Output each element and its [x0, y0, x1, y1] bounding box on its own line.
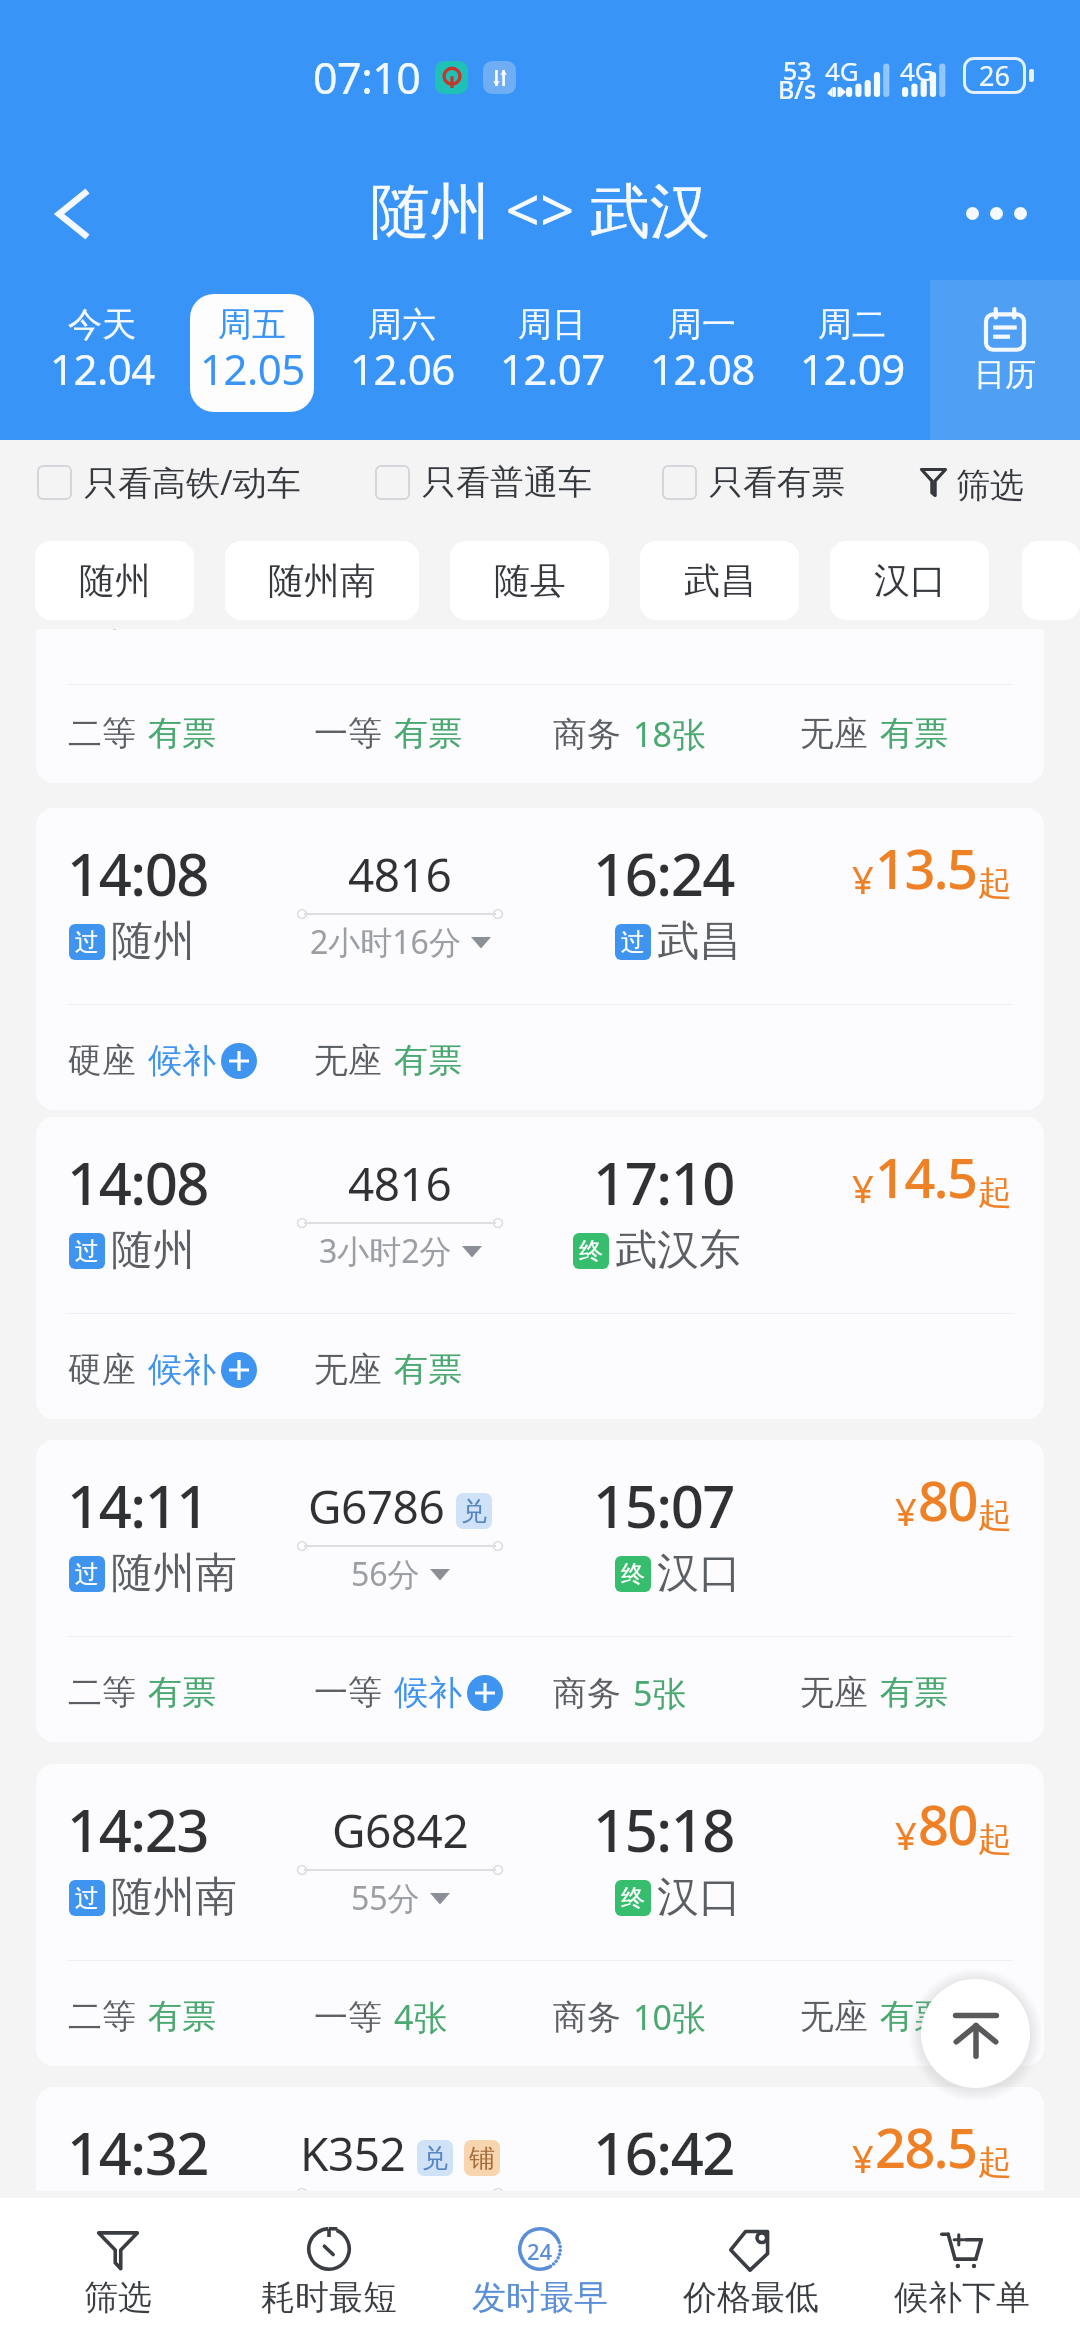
staticText: 硬座: [68, 1039, 136, 1082]
button[interactable]: 随州南: [225, 541, 419, 620]
staticText: 随州南: [111, 1871, 237, 1924]
button[interactable]: 只看普通车: [371, 450, 592, 514]
staticText: 14:23: [67, 1790, 208, 1869]
staticText: G6786: [308, 1475, 445, 1538]
staticText: 商务: [553, 713, 621, 756]
staticText: 12.08: [650, 340, 755, 397]
staticText: 有票: [880, 1995, 948, 2038]
staticText: 武昌: [684, 558, 756, 603]
button[interactable]: 价格最低: [646, 2198, 856, 2340]
button[interactable]: 日历: [935, 280, 1080, 440]
staticText: 候补: [394, 1671, 462, 1714]
staticText: 起: [978, 1818, 1012, 1861]
staticText: 一等: [314, 1996, 382, 2039]
staticText: 只看有票: [709, 461, 845, 504]
staticText: 终: [621, 1883, 645, 1913]
button[interactable]: 14:32: [36, 2087, 1044, 2191]
staticText: 起: [978, 1494, 1012, 1537]
staticText: 随州: [111, 1224, 195, 1277]
staticText: 有票: [880, 1671, 948, 1714]
staticText: 12.06: [350, 340, 455, 397]
staticText: 5张: [633, 1670, 687, 1716]
staticText: ¥: [895, 1809, 917, 1861]
staticText: 兑: [422, 2142, 448, 2175]
staticText: 无座: [314, 1348, 382, 1391]
staticText: 3小时2分: [319, 1229, 452, 1273]
staticText: G6842: [332, 1799, 469, 1862]
staticText: 过: [75, 1559, 99, 1589]
button[interactable]: 14:08: [36, 1117, 1044, 1419]
staticText: ¥: [852, 853, 874, 905]
staticText: B/s: [778, 72, 817, 106]
staticText: 候补: [148, 1039, 216, 1082]
staticText: 一等: [314, 1671, 382, 1714]
staticText: 28.5: [875, 2110, 977, 2184]
staticText: 周五: [218, 303, 286, 346]
staticText: 有票: [148, 712, 216, 755]
staticText: 17:10: [593, 1143, 738, 1222]
button[interactable]: 24: [435, 2198, 645, 2340]
staticText: 4G: [825, 53, 859, 88]
button[interactable]: 筛选: [13, 2198, 223, 2340]
button[interactable]: 周五: [177, 273, 327, 433]
staticText: 14:08: [67, 834, 208, 913]
staticText: 4816: [348, 843, 452, 906]
staticText: 无座: [800, 1995, 868, 2038]
button[interactable]: 随州: [35, 541, 194, 620]
button[interactable]: 周日: [477, 273, 627, 433]
button[interactable]: 汉口: [830, 541, 989, 620]
staticText: 终: [579, 1236, 603, 1266]
staticText: 15:18: [593, 1790, 738, 1869]
staticText: ¥: [895, 1485, 917, 1537]
button[interactable]: 14:08: [36, 808, 1044, 1110]
button[interactable]: 筛选: [908, 446, 1048, 518]
staticText: 26: [979, 57, 1010, 94]
button[interactable]: 今天: [27, 273, 177, 433]
staticText: 4G: [900, 53, 934, 88]
button[interactable]: 14:23: [36, 1764, 1044, 2066]
staticText: 终: [621, 1559, 645, 1589]
button[interactable]: 周六: [327, 273, 477, 433]
staticText: 发时最早: [472, 2276, 608, 2319]
staticText: 武汉东: [615, 1224, 741, 1277]
staticText: 兑: [461, 1495, 487, 1528]
staticText: 有票: [394, 1039, 462, 1082]
button[interactable]: 候补下单: [857, 2198, 1067, 2340]
staticText: 过: [75, 927, 99, 957]
button[interactable]: More options: [940, 167, 1052, 259]
button[interactable]: 周二: [777, 273, 927, 433]
staticText: 无座: [800, 1671, 868, 1714]
button[interactable]: Back: [26, 168, 118, 260]
button[interactable]: 周一: [627, 273, 777, 433]
button[interactable]: 耗时最短: [224, 2198, 434, 2340]
staticText: 商务: [553, 1996, 621, 2039]
button[interactable]: 13:58: [36, 629, 1044, 783]
button[interactable]: Back to top: [921, 1979, 1030, 2088]
staticText: 14:11: [67, 1466, 208, 1545]
staticText: 15:07: [593, 1466, 738, 1545]
button[interactable]: 只看高铁/动车: [33, 450, 301, 514]
staticText: 起: [978, 2141, 1012, 2184]
button[interactable]: 只看有票: [658, 450, 845, 514]
staticText: 24: [527, 2236, 553, 2266]
staticText: 汉口: [657, 1547, 741, 1600]
staticText: 起: [978, 1171, 1012, 1214]
staticText: 周六: [368, 303, 436, 346]
staticText: 过: [75, 1236, 99, 1266]
button[interactable]: 随县: [450, 541, 609, 620]
button[interactable]: 武昌: [640, 541, 799, 620]
staticText: 随县: [494, 558, 566, 603]
staticText: 14:08: [67, 1143, 208, 1222]
staticText: 铺: [469, 2142, 495, 2175]
staticText: 14:32: [67, 2113, 208, 2191]
staticText: 硬座: [68, 1348, 136, 1391]
button[interactable]: 14:11: [36, 1440, 1044, 1742]
staticText: 候补: [148, 1348, 216, 1391]
staticText: 价格最低: [683, 2276, 819, 2319]
staticText: 只看普通车: [422, 461, 592, 504]
staticText: 18张: [633, 711, 706, 757]
staticText: 周二: [818, 303, 886, 346]
